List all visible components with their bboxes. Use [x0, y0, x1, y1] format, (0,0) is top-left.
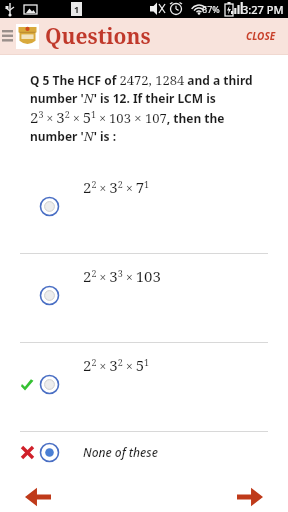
staticText: 22 × 32 × 71	[83, 177, 150, 197]
staticText: 22 × 32 × 51	[83, 355, 150, 375]
button[interactable]: 22 × 33 × 103	[0, 254, 288, 342]
button[interactable]: Previous question	[20, 482, 56, 512]
staticText: 3:27 PM	[242, 2, 284, 17]
button[interactable]: None of these	[0, 432, 288, 472]
button[interactable]: 22 × 32 × 51	[0, 343, 288, 431]
staticText: number 'N' is 12. If their LCM is	[30, 89, 216, 107]
staticText: Questions	[45, 22, 151, 51]
staticText: 23 × 32 × 51 × 103 × 107, then the	[30, 107, 225, 127]
staticText: 1	[74, 3, 80, 15]
button[interactable]: Next question	[232, 482, 268, 512]
button[interactable]: App logo	[16, 24, 39, 49]
staticText: 22 × 33 × 103	[83, 266, 161, 286]
staticText: 67%	[202, 3, 220, 15]
staticText: R	[74, 0, 78, 8]
staticText: None of these	[83, 444, 158, 460]
staticText: Q 5 The HCF of 2472, 1284 and a third	[30, 71, 253, 89]
staticText: number 'N' is :	[30, 127, 117, 145]
button[interactable]: Menu	[0, 24, 14, 48]
button[interactable]: 22 × 32 × 71	[0, 165, 288, 253]
staticText: CLOSE	[246, 29, 276, 43]
button[interactable]: CLOSE	[242, 25, 280, 47]
